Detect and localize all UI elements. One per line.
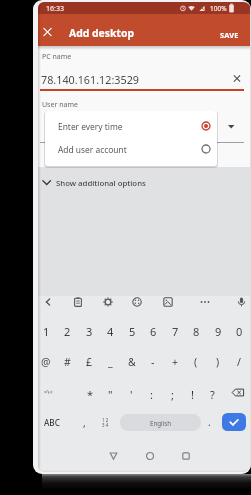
staticText: Enter every time (58, 121, 123, 132)
staticText: SAVE (220, 30, 239, 40)
staticText: @ (41, 355, 51, 369)
staticText: ) (216, 355, 220, 369)
staticText: 78.140.161.12:3529 (41, 72, 140, 87)
staticText: 9 (215, 324, 222, 339)
staticText: User name (42, 100, 78, 110)
staticText: ! (191, 387, 194, 402)
staticText: 3 (86, 324, 93, 339)
staticText: Add user account (58, 144, 127, 155)
staticText: 3 4 (102, 422, 109, 428)
staticText: 100% (210, 4, 227, 13)
staticText: 0 (236, 324, 243, 339)
staticText: ( (194, 355, 198, 369)
staticText: ' (130, 387, 133, 402)
staticText: =\< (44, 388, 53, 396)
staticText: 16:33 (46, 4, 64, 14)
staticText: 5 (129, 324, 136, 339)
staticText: . (208, 415, 211, 429)
staticText: ? (210, 387, 215, 402)
staticText: £ (86, 355, 93, 369)
staticText: PC name (42, 52, 72, 62)
staticText: English (150, 419, 172, 427)
staticText: & (128, 355, 136, 369)
staticText: Show additional options (56, 178, 146, 189)
staticText: # (64, 355, 71, 369)
staticText: ABC (44, 417, 60, 428)
staticText: - (151, 355, 155, 369)
staticText: " (108, 387, 113, 402)
staticText: 1 2 (102, 417, 109, 423)
staticText: 2 (64, 324, 71, 339)
staticText: Add desktop (69, 26, 135, 40)
staticText: _ (108, 355, 113, 369)
staticText: 1 (43, 324, 50, 339)
staticText: 6 (150, 324, 157, 339)
staticText: : (150, 387, 153, 402)
staticText: 7 (172, 324, 179, 339)
staticText: ; (171, 387, 174, 402)
staticText: 4 (107, 324, 114, 339)
staticText: * (87, 387, 94, 402)
staticText: / (237, 355, 241, 369)
staticText: , (83, 416, 86, 430)
staticText: 8 (193, 324, 200, 339)
staticText: + (172, 355, 179, 369)
